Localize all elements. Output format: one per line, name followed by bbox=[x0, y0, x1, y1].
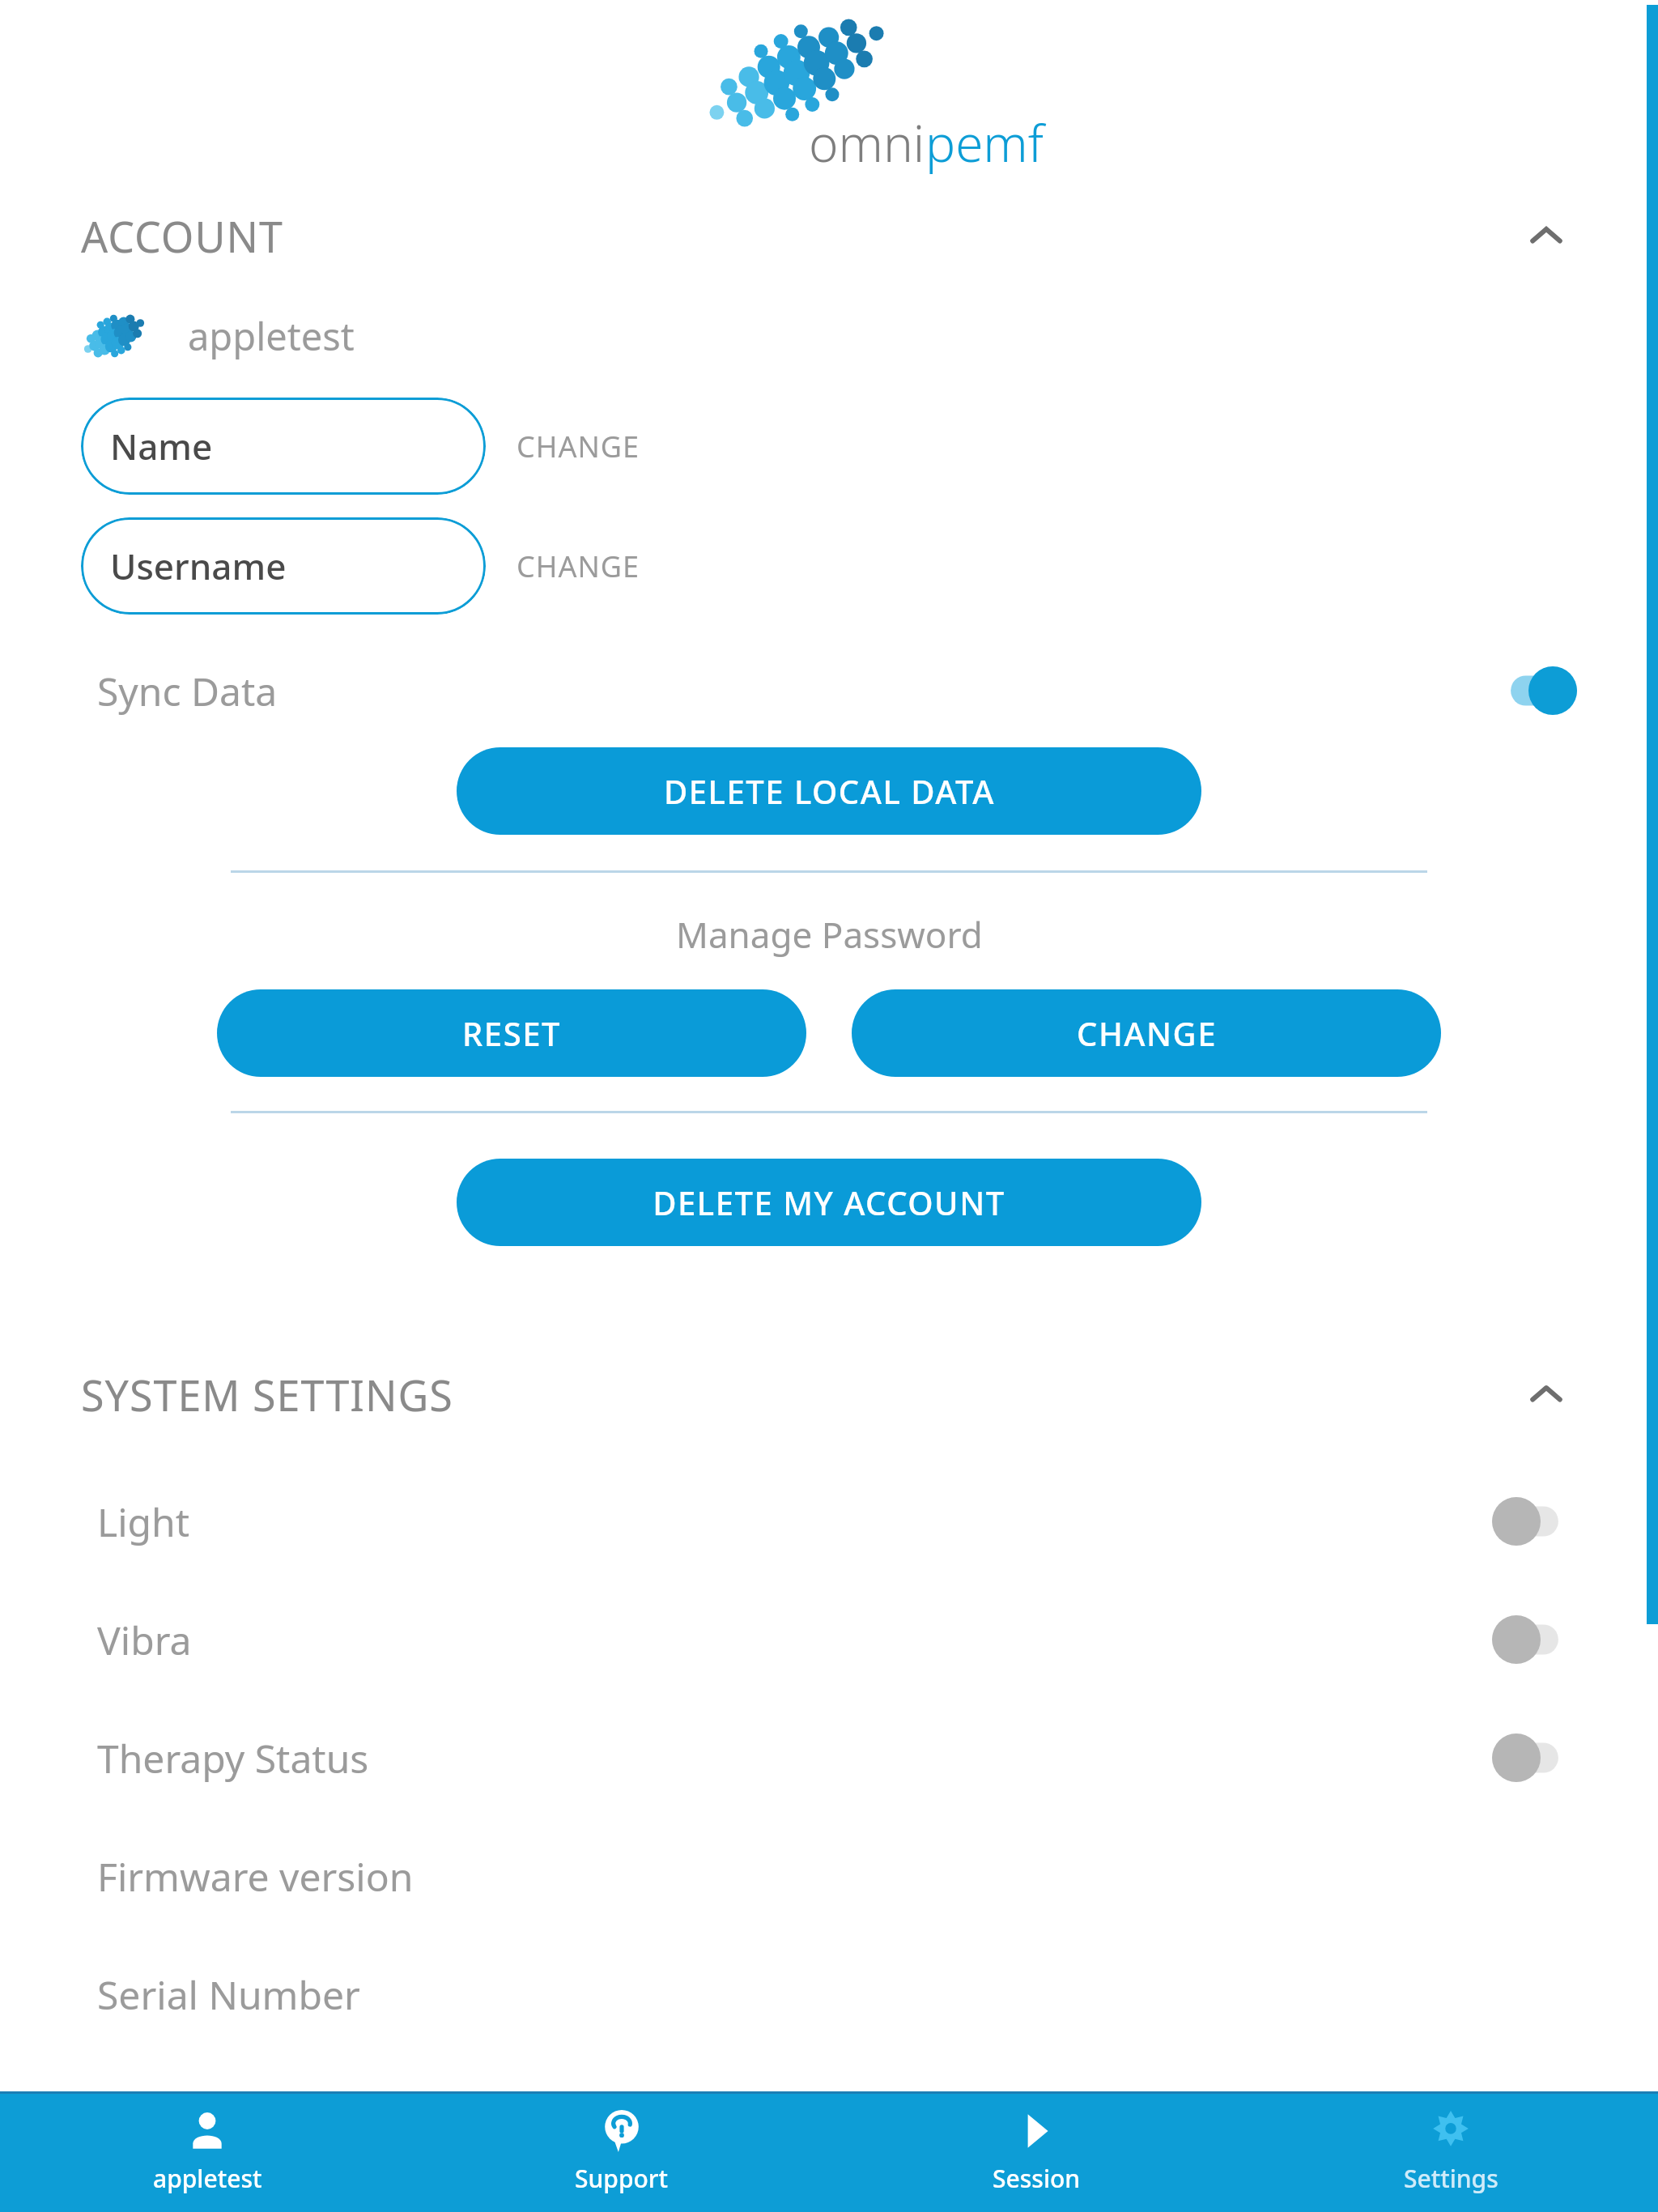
staticText: ACCOUNT bbox=[81, 207, 283, 265]
button[interactable]: Sync Data bbox=[0, 647, 1658, 734]
button[interactable]: Toggle off bbox=[1492, 1497, 1577, 1546]
staticText: appletest bbox=[153, 2162, 262, 2195]
staticText: CHANGE bbox=[517, 427, 640, 466]
staticText: Settings bbox=[1404, 2162, 1499, 2195]
button[interactable]: Account bbox=[0, 2094, 414, 2212]
button[interactable]: Toggle off bbox=[1492, 1733, 1577, 1782]
button[interactable]: Firmware version bbox=[0, 1817, 1658, 1935]
button[interactable]: Light bbox=[0, 1462, 1658, 1580]
button[interactable]: Settings bbox=[1243, 2094, 1658, 2212]
other: Collapse ACCOUNT bbox=[1524, 214, 1569, 259]
staticText: Manage Password bbox=[676, 910, 983, 959]
staticText: Firmware version bbox=[97, 1850, 414, 1903]
staticText: Name bbox=[110, 422, 213, 470]
other: Support bbox=[601, 2110, 643, 2152]
staticText: DELETE MY ACCOUNT bbox=[653, 1180, 1005, 1224]
button[interactable]: ACCOUNT bbox=[0, 207, 1658, 265]
staticText: Support bbox=[575, 2162, 669, 2195]
staticText: CHANGE bbox=[517, 547, 640, 586]
staticText: CHANGE bbox=[1077, 1011, 1217, 1055]
button[interactable]: DELETE LOCAL DATA bbox=[457, 747, 1201, 835]
other: Collapse SYSTEM SETTINGS bbox=[1524, 1372, 1569, 1418]
other: Settings bbox=[1430, 2110, 1472, 2152]
button[interactable]: Username bbox=[81, 517, 486, 615]
staticText: Username bbox=[110, 542, 287, 590]
staticText: omni bbox=[809, 108, 925, 177]
staticText: DELETE LOCAL DATA bbox=[664, 769, 995, 813]
staticText: pemf bbox=[925, 108, 1044, 177]
button[interactable]: Support bbox=[414, 2094, 829, 2212]
button[interactable]: Name bbox=[81, 398, 486, 495]
button[interactable]: CHANGE bbox=[486, 407, 671, 486]
button[interactable]: SYSTEM SETTINGS bbox=[0, 1366, 1658, 1423]
button[interactable]: RESET bbox=[217, 989, 806, 1077]
button[interactable]: Toggle off bbox=[1492, 1615, 1577, 1664]
button[interactable]: CHANGE bbox=[852, 989, 1441, 1077]
button[interactable]: Toggle on bbox=[1492, 666, 1577, 715]
staticText: Serial Number bbox=[97, 1968, 360, 2021]
button[interactable]: appletest bbox=[0, 310, 1658, 362]
button[interactable]: Vibra bbox=[0, 1580, 1658, 1699]
button[interactable]: Serial Number bbox=[0, 1935, 1658, 2053]
staticText: Sync Data bbox=[97, 665, 278, 717]
other: Account bbox=[186, 2110, 228, 2152]
staticText: SYSTEM SETTINGS bbox=[81, 1366, 453, 1423]
button[interactable]: CHANGE bbox=[486, 527, 671, 606]
staticText: Light bbox=[97, 1495, 190, 1548]
staticText: appletest bbox=[188, 310, 355, 362]
staticText: Therapy Status bbox=[97, 1732, 369, 1784]
staticText: Vibra bbox=[97, 1614, 192, 1666]
staticText: RESET bbox=[462, 1011, 561, 1055]
other: Session bbox=[1015, 2110, 1057, 2152]
staticText: Session bbox=[993, 2162, 1081, 2195]
button[interactable]: Session bbox=[829, 2094, 1243, 2212]
button[interactable]: Therapy Status bbox=[0, 1699, 1658, 1817]
button[interactable]: DELETE MY ACCOUNT bbox=[457, 1159, 1201, 1246]
